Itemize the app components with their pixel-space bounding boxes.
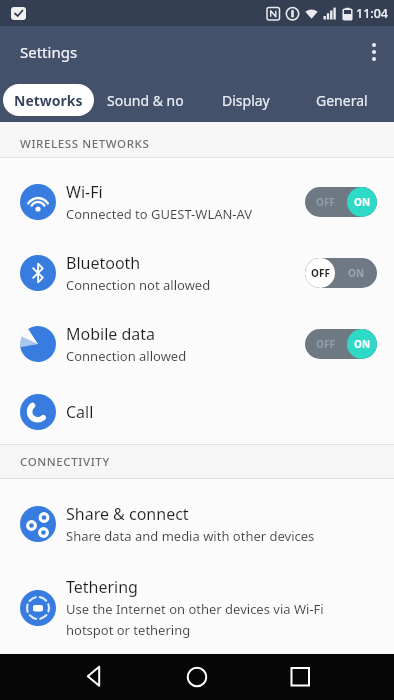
staticText: Call bbox=[66, 401, 94, 423]
staticText: Share & connect bbox=[66, 503, 189, 525]
button[interactable]: Display bbox=[222, 91, 270, 110]
staticText: ON bbox=[354, 195, 371, 209]
staticText: OFF bbox=[311, 266, 330, 280]
button[interactable] bbox=[354, 32, 394, 72]
staticText: Connection allowed bbox=[66, 347, 187, 365]
staticText: Connected to GUEST-WLAN-AV bbox=[66, 205, 253, 223]
staticText: ON bbox=[348, 266, 365, 280]
staticText: Wi-Fi bbox=[66, 181, 103, 203]
staticText: 11:04 bbox=[356, 5, 389, 22]
staticText: Mobile data bbox=[66, 323, 156, 345]
button[interactable] bbox=[278, 655, 322, 699]
button[interactable]: Mobile data bbox=[0, 308, 394, 379]
staticText: OFF bbox=[316, 195, 335, 209]
button[interactable]: Wi-Fi bbox=[0, 166, 394, 237]
staticText: Use the Internet on other devices via Wi… bbox=[66, 600, 324, 618]
staticText: CONNECTIVITY bbox=[20, 454, 110, 470]
staticText: hotspot or tethering bbox=[66, 621, 191, 639]
button[interactable]: Share & connect bbox=[0, 487, 394, 561]
button[interactable]: Bluetooth bbox=[0, 237, 394, 308]
button[interactable]: Call bbox=[0, 379, 394, 444]
staticText: Bluetooth bbox=[66, 252, 141, 274]
button[interactable] bbox=[73, 655, 117, 699]
button[interactable]: Networks bbox=[3, 84, 94, 116]
staticText: WIRELESS NETWORKS bbox=[20, 136, 150, 152]
staticText: Connection not allowed bbox=[66, 276, 211, 294]
button[interactable]: OFF bbox=[305, 187, 377, 217]
staticText: Networks bbox=[14, 91, 83, 110]
staticText: Tethering bbox=[66, 576, 138, 598]
staticText: ON bbox=[354, 337, 371, 351]
staticText: Share data and media with other devices bbox=[66, 527, 315, 545]
button[interactable]: Sound & no bbox=[107, 91, 184, 110]
button[interactable]: OFF bbox=[305, 329, 377, 359]
button[interactable]: Tethering bbox=[0, 561, 394, 654]
button[interactable] bbox=[175, 655, 219, 699]
staticText: OFF bbox=[316, 337, 335, 351]
staticText: Settings bbox=[20, 42, 78, 62]
button[interactable]: ON bbox=[305, 258, 377, 288]
button[interactable]: General bbox=[316, 91, 368, 110]
